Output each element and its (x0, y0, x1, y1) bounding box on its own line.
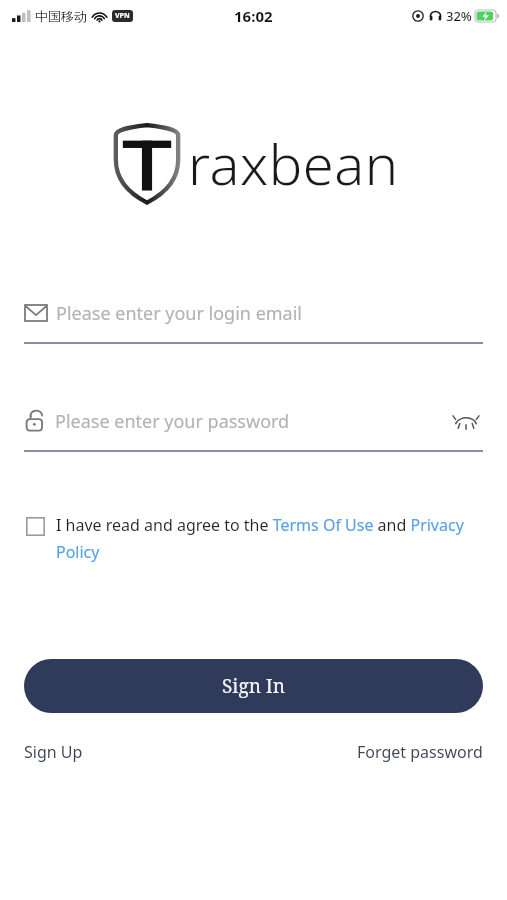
staticText: I have read and agree to the Terms Of Us… (56, 514, 477, 563)
staticText: Forget password (357, 741, 483, 763)
button[interactable]: Please enter your login email (24, 296, 483, 330)
button[interactable]: Show password (449, 404, 483, 438)
button[interactable]: Forget password (357, 737, 483, 767)
staticText: 16:02 (234, 6, 273, 26)
staticText: 中国移动 (35, 8, 87, 24)
staticText: Please enter your password (55, 409, 290, 434)
staticText: Sign In (222, 673, 286, 699)
staticText: VPN (115, 11, 130, 21)
button[interactable]: I have read and agree to the Terms Of Us… (26, 514, 477, 563)
button[interactable]: Sign In (24, 659, 483, 713)
button[interactable]: Please enter your password (24, 404, 449, 438)
staticText: Sign Up (24, 741, 83, 763)
staticText: 32% (446, 7, 472, 25)
button[interactable]: Sign Up (24, 737, 83, 767)
staticText: raxbean (188, 125, 399, 201)
staticText: Please enter your login email (56, 301, 303, 326)
